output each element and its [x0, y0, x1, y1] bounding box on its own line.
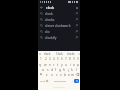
staticText: r	[53, 62, 55, 66]
staticText: .	[72, 79, 73, 83]
staticText: Clock	[56, 52, 63, 56]
button[interactable]: Voice	[38, 51, 41, 56]
staticText: 9	[73, 57, 75, 61]
staticText: 7	[65, 57, 67, 61]
staticText: t	[57, 62, 59, 66]
button[interactable]: f	[54, 66, 58, 71]
button[interactable]: t	[56, 61, 60, 66]
button[interactable]: h	[62, 66, 66, 71]
staticText: clever clockwork	[45, 23, 71, 27]
staticText: v	[60, 72, 62, 76]
staticText: y	[61, 62, 63, 66]
button[interactable]: 8	[68, 56, 72, 61]
button[interactable]: Backspace	[75, 71, 80, 77]
button[interactable]: 9	[72, 56, 76, 61]
button[interactable]: clock	[44, 5, 74, 10]
button[interactable]: clockify	[38, 34, 80, 40]
button[interactable]: 4	[52, 56, 56, 61]
staticText: clock	[46, 5, 55, 10]
button[interactable]: .	[70, 79, 74, 83]
staticText: n	[68, 72, 71, 76]
button[interactable]: ?123	[39, 79, 45, 83]
staticText: e	[49, 62, 51, 66]
button[interactable]: q	[38, 61, 43, 66]
button[interactable]: s	[45, 66, 50, 71]
staticText: 2	[45, 57, 47, 61]
staticText: 8	[69, 57, 71, 61]
button[interactable]: n	[67, 71, 71, 77]
staticText: clocks	[45, 17, 55, 21]
staticText: clock	[44, 52, 51, 56]
button[interactable]: m	[71, 71, 75, 77]
button[interactable]: e	[48, 61, 52, 66]
staticText: f	[55, 67, 57, 71]
staticText: 5	[57, 57, 59, 61]
button[interactable]: i	[68, 61, 72, 66]
staticText: clo	[45, 29, 50, 33]
button[interactable]: p	[76, 61, 80, 66]
staticText: 0	[77, 57, 79, 61]
button[interactable]: clock	[38, 10, 80, 16]
button[interactable]: 3	[48, 56, 52, 61]
staticText: clocks	[67, 52, 75, 56]
button[interactable]: 1	[38, 56, 43, 61]
staticText: g	[59, 67, 62, 71]
staticText: o	[73, 62, 75, 66]
button[interactable]: Shift	[38, 71, 44, 77]
button[interactable]: 0	[76, 56, 80, 61]
staticText: b	[64, 72, 67, 76]
button[interactable]: clever clockwork	[38, 22, 80, 28]
button[interactable]: 2	[43, 56, 48, 61]
button[interactable]: z	[44, 71, 49, 77]
button[interactable]: l	[74, 66, 78, 71]
staticText: 1	[40, 57, 42, 61]
staticText: s	[47, 67, 49, 71]
staticText: j	[68, 67, 69, 71]
staticText: d	[51, 67, 54, 71]
staticText: ?123	[40, 80, 45, 83]
button[interactable]: 5	[56, 56, 60, 61]
button[interactable]: Back	[39, 5, 44, 10]
button[interactable]: 6	[60, 56, 64, 61]
staticText: 6	[61, 57, 63, 61]
button[interactable]: x	[49, 71, 54, 77]
button[interactable]: w	[43, 61, 48, 66]
staticText: clock	[45, 11, 53, 15]
button[interactable]: clock	[41, 51, 53, 56]
button[interactable]: Search	[74, 79, 79, 83]
button[interactable]: Emoji	[45, 79, 49, 83]
staticText: 3	[49, 57, 51, 61]
button[interactable]: k	[70, 66, 74, 71]
button[interactable]: clocks	[38, 16, 80, 22]
button[interactable]: b	[63, 71, 67, 77]
button[interactable]: v	[59, 71, 63, 77]
staticText: p	[77, 62, 80, 66]
button[interactable]: Voice search	[74, 5, 79, 10]
staticText: h	[63, 67, 66, 71]
staticText: w	[44, 62, 47, 66]
button[interactable]: clocks	[65, 51, 77, 56]
button[interactable]: r	[52, 61, 56, 66]
button[interactable]: y	[60, 61, 64, 66]
button[interactable]: Clock	[53, 51, 65, 56]
staticText: i	[70, 62, 71, 66]
button[interactable]: a	[40, 66, 45, 71]
staticText: q	[39, 62, 42, 66]
staticText: a	[42, 67, 44, 71]
button[interactable]: j	[66, 66, 70, 71]
staticText: c	[56, 72, 58, 76]
button[interactable]: Space	[49, 79, 70, 83]
button[interactable]: g	[58, 66, 62, 71]
button[interactable]: 7	[64, 56, 68, 61]
button[interactable]: clo	[38, 28, 80, 34]
button[interactable]: d	[50, 66, 54, 71]
staticText: l	[76, 67, 77, 71]
button[interactable]: c	[54, 71, 59, 77]
staticText: z	[46, 72, 48, 76]
staticText: u	[65, 62, 68, 66]
staticText: x	[51, 72, 53, 76]
staticText: k	[71, 67, 73, 71]
button[interactable]: u	[64, 61, 68, 66]
button[interactable]: o	[72, 61, 76, 66]
button[interactable]: More	[77, 51, 80, 56]
